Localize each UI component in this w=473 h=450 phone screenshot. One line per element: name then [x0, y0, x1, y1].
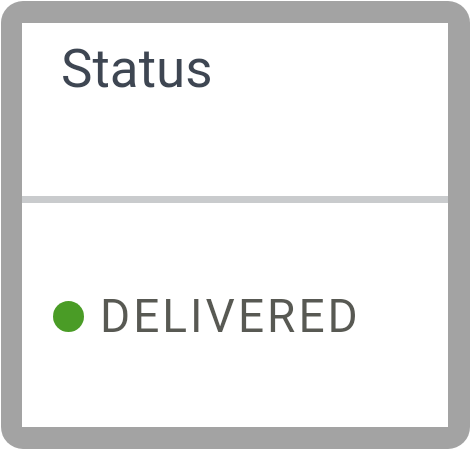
- button[interactable]: Status: [22, 23, 448, 196]
- button[interactable]: Delivered indicator: [22, 204, 448, 428]
- other: Delivered indicator: [53, 301, 84, 332]
- staticText: Status: [61, 38, 213, 100]
- staticText: DELIVERED: [100, 289, 361, 343]
